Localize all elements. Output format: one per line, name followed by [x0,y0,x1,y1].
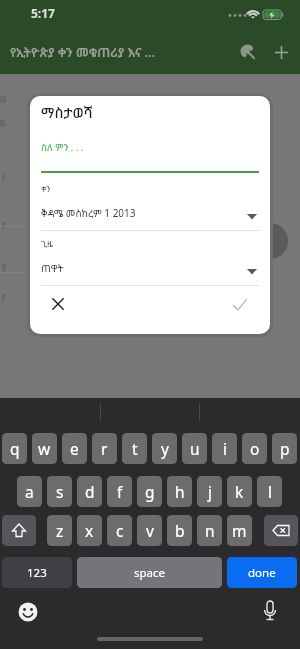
button[interactable]: g [137,476,162,507]
staticText: u [190,438,200,459]
staticText: ስለ ምን . . . [41,141,84,154]
button[interactable]: i [212,433,237,464]
staticText: i [223,438,227,459]
button[interactable] [268,39,295,66]
button[interactable]: f [107,476,132,507]
button[interactable]: z [47,515,72,546]
button[interactable]: x [77,515,102,546]
button[interactable]: w [32,433,57,464]
button[interactable]: b [167,515,192,546]
button[interactable]: u [182,433,207,464]
staticText: o [250,438,260,459]
staticText: v [146,520,154,541]
staticText: e [70,438,79,459]
staticText: h [175,481,185,502]
staticText: g [145,481,155,502]
button[interactable] [264,515,298,546]
button[interactable]: c [107,515,132,546]
button[interactable] [14,600,42,624]
button[interactable] [2,515,36,546]
button[interactable]: v [137,515,162,546]
staticText: 123 [27,565,47,581]
staticText: a [25,481,34,502]
staticText: m [232,520,247,541]
staticText: k [235,481,244,502]
staticText: p [280,438,290,459]
button[interactable]: p [272,433,297,464]
staticText: የኢትዮጵያ ቀን መቁጠሪያ እና ... [10,44,156,61]
staticText: ማስታወሻ [41,102,93,122]
button[interactable]: m [227,515,252,546]
button[interactable]: space [77,557,222,588]
button[interactable]: ጠዋት [41,257,259,283]
button[interactable]: t [122,433,147,464]
button[interactable]: r [92,433,117,464]
staticText: ጠዋት [41,261,64,275]
button[interactable]: s [47,476,72,507]
staticText: l [268,481,272,502]
button[interactable]: e [62,433,87,464]
staticText: y [161,438,169,459]
staticText: b [175,520,185,541]
button[interactable]: l [257,476,282,507]
staticText: ቅዳሜ መስከረም 1 2013 [41,206,136,220]
button[interactable]: ቅዳሜ መስከረም 1 2013 [41,202,259,228]
button[interactable] [258,598,282,626]
staticText: c [116,520,124,541]
button[interactable]: y [152,433,177,464]
staticText: x [85,520,94,541]
staticText: 5:17 [31,5,55,21]
button[interactable] [233,38,261,66]
staticText: t [132,438,138,459]
button[interactable] [44,290,72,318]
button[interactable]: h [167,476,192,507]
staticText: w [38,438,51,459]
button[interactable]: done [227,557,297,588]
staticText: n [205,520,215,541]
staticText: space [134,565,166,581]
staticText: j [208,481,212,502]
staticText: f [117,481,123,502]
staticText: ቀን [41,183,51,195]
staticText: d [85,481,95,502]
staticText: z [56,520,64,541]
button[interactable]: q [2,433,27,464]
staticText: q [10,438,20,459]
staticText: s [56,481,64,502]
button[interactable]: n [197,515,222,546]
staticText: done [248,565,276,581]
staticText: ጊዜ [41,238,53,250]
button[interactable]: o [242,433,267,464]
button[interactable]: j [197,476,222,507]
button[interactable]: 123 [2,557,72,588]
button[interactable]: a [17,476,42,507]
staticText: r [101,438,108,459]
button[interactable]: k [227,476,252,507]
button[interactable]: d [77,476,102,507]
button[interactable] [226,291,254,319]
